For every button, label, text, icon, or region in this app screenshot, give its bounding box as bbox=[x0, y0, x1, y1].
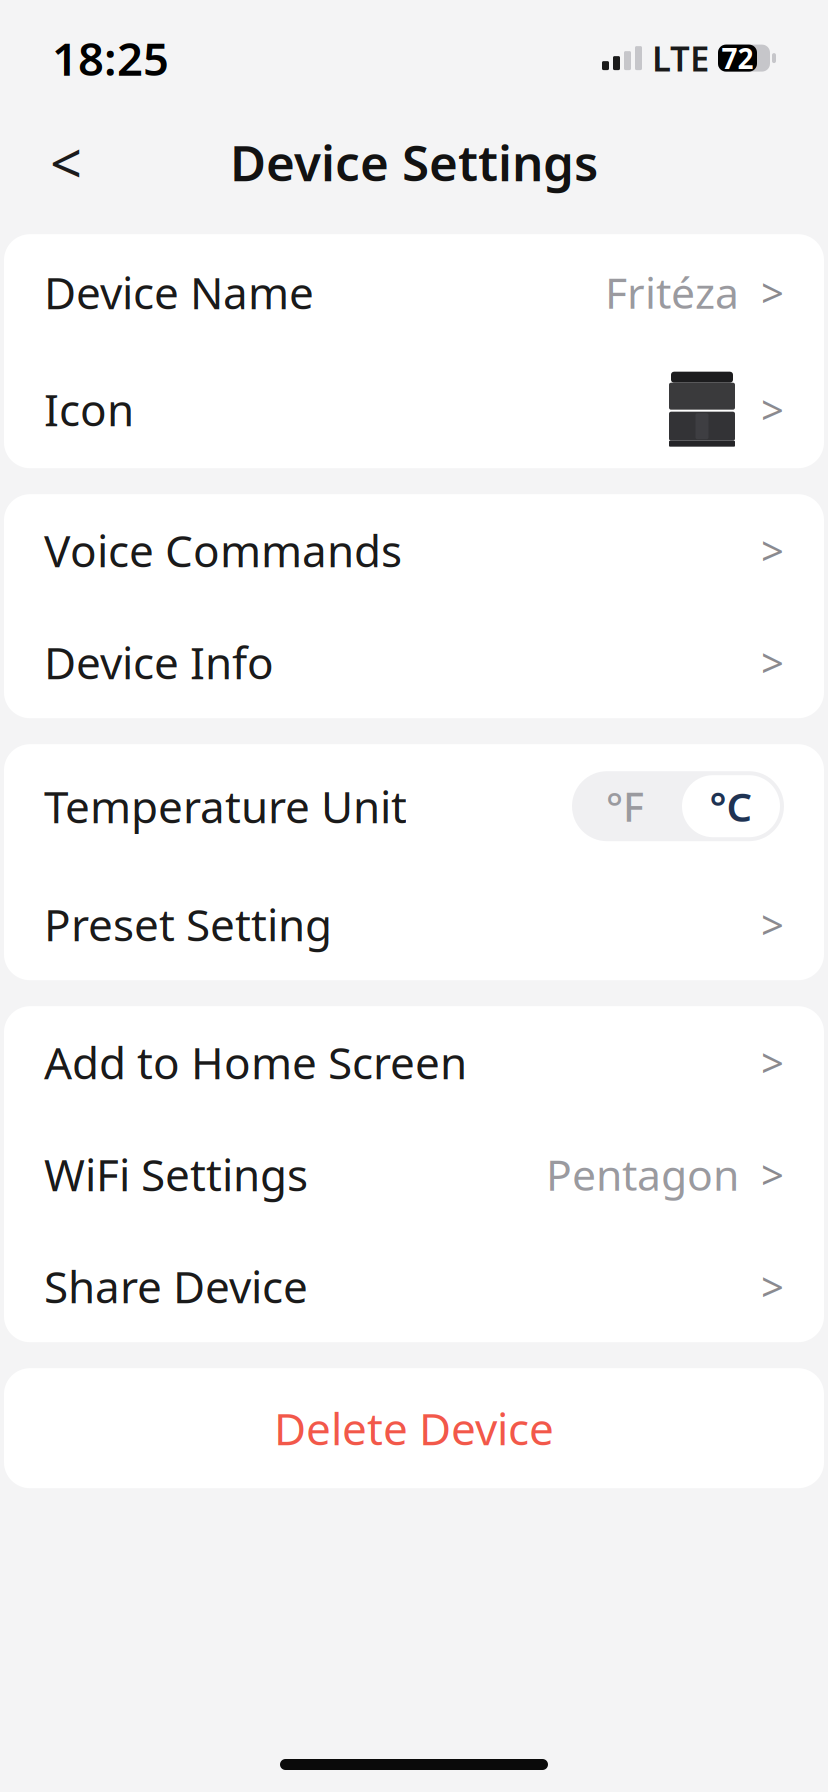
staticText: Device Info bbox=[44, 633, 274, 691]
staticText: Delete Device bbox=[274, 1399, 554, 1457]
staticText: Share Device bbox=[44, 1257, 308, 1315]
staticText: °F bbox=[606, 780, 644, 833]
button[interactable]: °F bbox=[572, 771, 678, 841]
button[interactable]: Delete Device bbox=[0, 1368, 828, 1488]
staticText: LTE bbox=[652, 35, 709, 81]
staticText: Temperature Unit bbox=[44, 777, 407, 835]
staticText: Fritéza bbox=[605, 264, 739, 321]
staticText: > bbox=[761, 1036, 784, 1089]
staticText: Device Settings bbox=[230, 129, 598, 195]
staticText: 72 bbox=[721, 39, 753, 77]
staticText: Preset Setting bbox=[44, 895, 332, 953]
button[interactable]: Device Name bbox=[4, 234, 824, 350]
button[interactable]: Add to Home Screen bbox=[4, 1006, 824, 1118]
staticText: Icon bbox=[44, 380, 134, 438]
staticText: > bbox=[761, 383, 784, 436]
staticText: Voice Commands bbox=[44, 521, 402, 579]
button[interactable]: Device Info bbox=[4, 606, 824, 718]
staticText: 18:25 bbox=[52, 28, 169, 88]
button[interactable]: Back bbox=[26, 122, 106, 202]
staticText: > bbox=[761, 266, 784, 319]
staticText: > bbox=[761, 1148, 784, 1201]
staticText: °C bbox=[709, 780, 752, 833]
staticText: Device Name bbox=[44, 263, 314, 321]
staticText: > bbox=[761, 1260, 784, 1313]
staticText: > bbox=[761, 524, 784, 577]
button[interactable]: Preset Setting bbox=[4, 868, 824, 980]
staticText: < bbox=[50, 125, 82, 199]
button[interactable]: WiFi Settings bbox=[4, 1118, 824, 1230]
button[interactable]: Icon bbox=[4, 350, 824, 468]
staticText: Add to Home Screen bbox=[44, 1033, 467, 1091]
staticText: > bbox=[761, 898, 784, 951]
staticText: Pentagon bbox=[546, 1146, 739, 1203]
button[interactable]: Voice Commands bbox=[4, 494, 824, 606]
staticText: > bbox=[761, 636, 784, 689]
button[interactable]: Share Device bbox=[4, 1230, 824, 1342]
staticText: WiFi Settings bbox=[44, 1145, 308, 1203]
button[interactable]: °C bbox=[682, 775, 780, 837]
